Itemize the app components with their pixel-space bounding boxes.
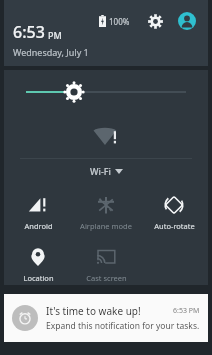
- button[interactable]: Android: [4, 189, 72, 237]
- staticText: It's time to wake up!: [46, 304, 141, 318]
- button[interactable]: Location: [4, 245, 72, 285]
- staticText: Airplane mode: [80, 221, 132, 231]
- button[interactable]: User profile: [176, 10, 198, 32]
- button[interactable]: Settings: [144, 10, 166, 32]
- button[interactable]: Auto-rotate: [140, 189, 208, 237]
- staticText: Android: [24, 221, 53, 231]
- staticText: Expand this notification for your tasks.: [46, 320, 200, 332]
- staticText: 6:53 PM: [173, 306, 200, 316]
- staticText: Cast screen: [86, 273, 127, 283]
- staticText: Wednesday, July 1: [13, 46, 89, 58]
- staticText: 100%: [109, 16, 130, 27]
- staticText: Wi-Fi: [90, 165, 111, 177]
- button[interactable]: Wi-Fi: [4, 159, 208, 183]
- button[interactable]: It's time to wake up!: [4, 294, 208, 342]
- staticText: Location: [23, 273, 54, 283]
- button[interactable]: Cast screen: [72, 245, 140, 285]
- staticText: PM: [48, 29, 62, 41]
- button[interactable]: Brightness: [4, 70, 208, 114]
- staticText: Auto-rotate: [154, 221, 195, 231]
- button[interactable]: Airplane mode: [72, 189, 140, 237]
- staticText: 6:53: [13, 21, 45, 43]
- button[interactable]: Battery 100 percent: [97, 13, 132, 29]
